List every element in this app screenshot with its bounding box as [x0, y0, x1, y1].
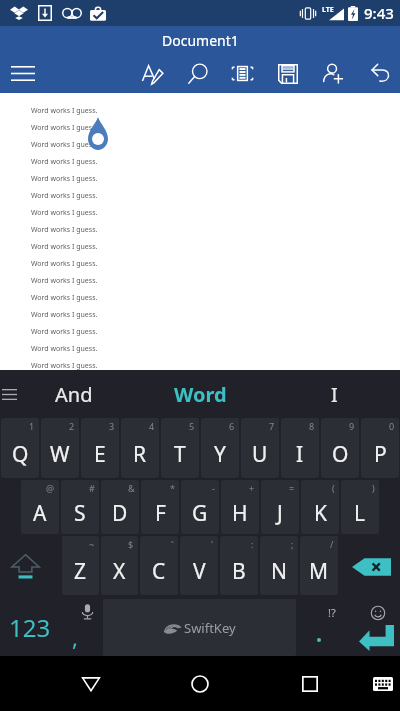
button[interactable]: Menu [0, 54, 46, 93]
staticText: Word works I guess. [31, 174, 98, 184]
button[interactable]: * [141, 480, 179, 534]
staticText: Y [214, 440, 226, 469]
staticText: 5 [189, 420, 195, 432]
button[interactable]: Share [310, 54, 355, 93]
button[interactable]: Word [131, 370, 269, 418]
staticText: Word works I guess. [31, 106, 98, 116]
button[interactable]: 2 [41, 418, 79, 478]
staticText: D [112, 499, 128, 528]
staticText: H [232, 499, 248, 528]
staticText: Q [12, 440, 29, 469]
button[interactable]: 5 [161, 418, 199, 478]
button[interactable]: / [300, 536, 338, 595]
staticText: SwiftKey [184, 619, 236, 637]
button[interactable]: = [261, 480, 299, 534]
staticText: Word works I guess. [31, 242, 98, 252]
button[interactable]: Period [296, 599, 344, 656]
staticText: & [128, 482, 135, 494]
button[interactable]: ; [260, 536, 298, 595]
staticText: : [251, 538, 254, 550]
button[interactable]: - [181, 480, 219, 534]
button[interactable]: 7 [241, 418, 279, 478]
staticText: T [174, 440, 186, 469]
button[interactable]: ˚ [140, 536, 178, 595]
button[interactable]: ~ [62, 536, 99, 595]
staticText: K [314, 499, 327, 528]
button[interactable]: Home [145, 656, 255, 711]
staticText: Word works I guess. [31, 208, 98, 218]
button[interactable]: Undo [355, 54, 400, 93]
staticText: I [331, 381, 338, 408]
staticText: 0 [389, 420, 395, 432]
staticText: V [193, 557, 206, 586]
button[interactable]: I [269, 370, 400, 418]
button[interactable]: Switch keyboard [365, 656, 400, 711]
button[interactable]: Voice input [60, 599, 103, 656]
staticText: Word works I guess. [31, 293, 98, 303]
staticText: Word works I guess. [31, 327, 98, 337]
staticText: 7 [269, 420, 275, 432]
button[interactable]: And [17, 370, 131, 418]
staticText: W [50, 440, 70, 469]
staticText: 1 [29, 420, 35, 432]
staticText: ˚ [171, 538, 174, 550]
button[interactable]: 4 [121, 418, 159, 478]
button[interactable]: Space [103, 599, 296, 656]
staticText: @ [46, 482, 55, 494]
button[interactable]: ) [341, 480, 379, 534]
button[interactable]: ( [301, 480, 339, 534]
button[interactable]: Back [0, 656, 145, 711]
button[interactable]: 6 [201, 418, 239, 478]
staticText: + [249, 482, 255, 494]
button[interactable]: Review [130, 54, 175, 93]
button[interactable]: Shift [0, 536, 61, 595]
staticText: Word works I guess. [31, 344, 98, 354]
button[interactable]: : [220, 536, 258, 595]
staticText: / [330, 538, 334, 550]
staticText: 8 [309, 420, 315, 432]
staticText: # [89, 482, 95, 494]
button[interactable]: Recents [255, 656, 365, 711]
staticText: Word works I guess. [31, 225, 98, 235]
staticText: O [332, 440, 349, 469]
button[interactable]: + [221, 480, 259, 534]
staticText: 123 [9, 611, 51, 644]
button[interactable]: & [101, 480, 139, 534]
staticText: 6 [229, 420, 235, 432]
staticText: P [374, 440, 387, 469]
button[interactable]: Search [175, 54, 220, 93]
button[interactable]: # [61, 480, 99, 534]
button[interactable]: 1 [1, 418, 39, 478]
button[interactable]: Reading view [220, 54, 265, 93]
staticText: Word works I guess. [31, 157, 98, 167]
staticText: , [72, 622, 78, 652]
staticText: Z [74, 557, 87, 586]
button[interactable]: ' [180, 536, 218, 595]
button[interactable]: 9 [321, 418, 359, 478]
staticText: 4 [149, 420, 155, 432]
button[interactable]: 123 [0, 599, 60, 656]
button[interactable]: Save [265, 54, 310, 93]
button[interactable]: 3 [81, 418, 119, 478]
staticText: 3 [109, 420, 115, 432]
staticText: Word works I guess. [31, 361, 98, 371]
button[interactable]: $ [101, 536, 138, 595]
button[interactable]: Enter [344, 599, 400, 656]
staticText: I [296, 440, 304, 469]
staticText: And [55, 381, 93, 408]
staticText: ' [211, 538, 214, 550]
staticText: ( [332, 482, 335, 494]
staticText: 2 [69, 420, 75, 432]
staticText: Word [174, 381, 227, 408]
staticText: - [212, 482, 215, 494]
staticText: Word works I guess. [31, 191, 98, 201]
button[interactable]: 0 [361, 418, 399, 478]
staticText: Word works I guess. [31, 123, 98, 133]
staticText: G [192, 499, 208, 528]
staticText: !? [328, 605, 336, 620]
button[interactable]: @ [21, 480, 59, 534]
staticText: ~ [89, 538, 95, 550]
button[interactable]: Backspace [339, 536, 400, 595]
button[interactable]: Keyboard menu [1, 370, 18, 418]
button[interactable]: 8 [281, 418, 319, 478]
